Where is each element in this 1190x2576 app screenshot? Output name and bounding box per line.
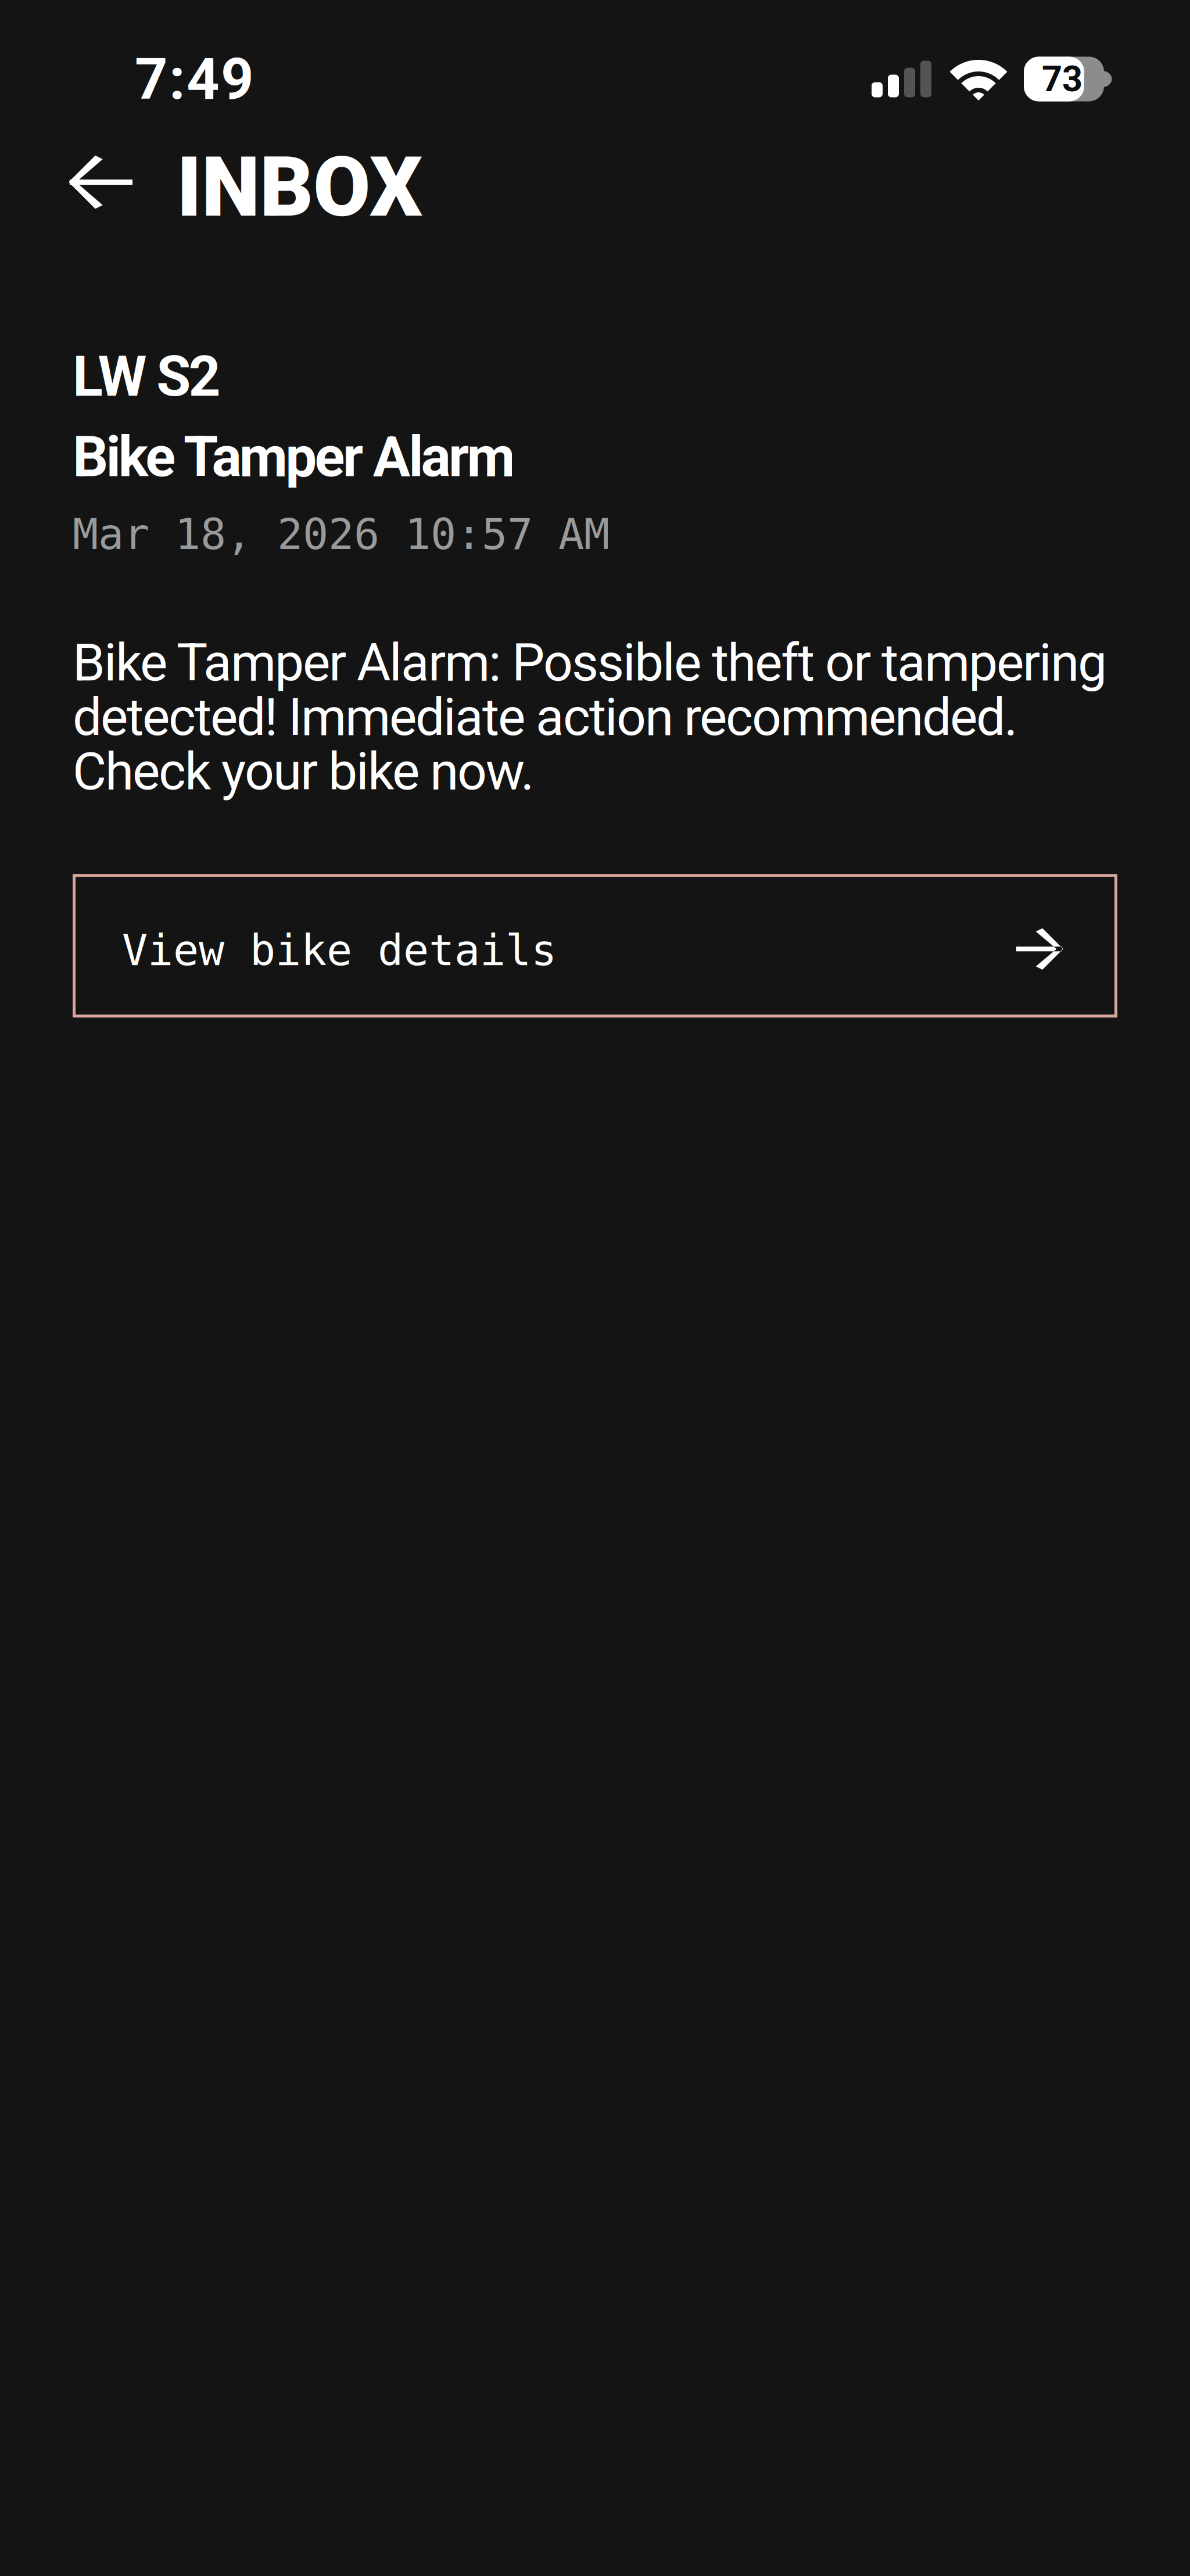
staticText: Mar 18, 2026 10:57 AM bbox=[73, 510, 610, 559]
staticText: 73 bbox=[1042, 58, 1083, 100]
staticText: LW S2 bbox=[73, 344, 221, 409]
staticText: Bike Tamper Alarm bbox=[73, 424, 515, 490]
staticText: View bike details bbox=[122, 926, 557, 975]
staticText: Bike Tamper Alarm: Possible theft or tam… bbox=[73, 632, 1107, 802]
button[interactable]: View bike details bbox=[73, 874, 1117, 1018]
staticText: 7:49 bbox=[135, 45, 254, 113]
staticText: INBOX bbox=[177, 139, 422, 236]
button[interactable]: Back bbox=[0, 139, 177, 236]
